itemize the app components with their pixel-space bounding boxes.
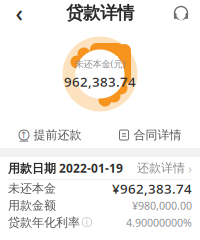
staticText: 贷款年化利率 xyxy=(8,215,80,230)
staticText: 还款详情 xyxy=(137,161,185,175)
staticText: ¥962,383.74 xyxy=(112,180,192,197)
button[interactable]: Customer service xyxy=(168,1,194,25)
staticText: 未还本金(元) xyxy=(74,57,125,70)
button[interactable]: 用款日期 2022-01-19 xyxy=(0,157,200,179)
button[interactable]: Rate info xyxy=(80,215,94,229)
staticText: 用款日期 2022-01-19 xyxy=(8,160,123,176)
button[interactable]: ↑ xyxy=(0,123,100,147)
button[interactable]: 合同详情 xyxy=(100,123,200,147)
staticText: 提前还款 xyxy=(33,128,81,142)
staticText: 贷款详情 xyxy=(66,2,134,24)
button[interactable]: Back xyxy=(6,1,32,25)
staticText: 用款金额 xyxy=(8,198,56,213)
staticText: ¥980,000.00 xyxy=(132,198,192,213)
staticText: 4.90000000% xyxy=(126,215,192,230)
staticText: ↑ xyxy=(20,130,28,140)
staticText: › xyxy=(185,159,192,177)
staticText: ⓘ xyxy=(81,216,92,229)
staticText: 合同详情 xyxy=(133,128,181,142)
staticText: 未还本金 xyxy=(8,181,56,196)
staticText: ‹ xyxy=(15,0,22,28)
staticText: 962,383.74 xyxy=(64,73,136,90)
